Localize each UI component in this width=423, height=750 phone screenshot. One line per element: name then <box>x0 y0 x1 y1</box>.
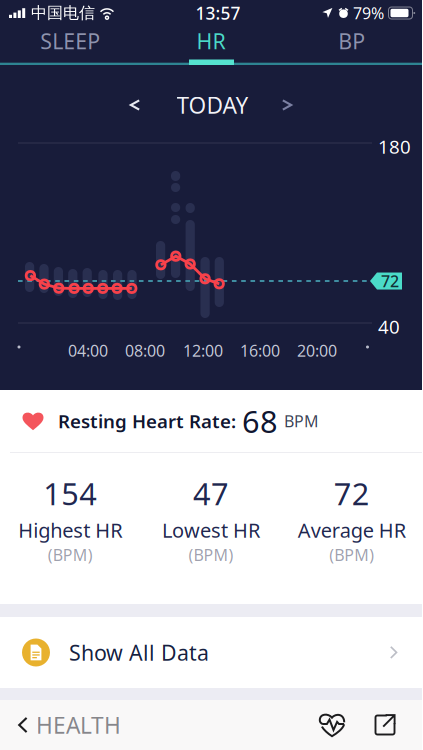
staticText: 72 <box>334 473 370 514</box>
staticText: (BPM) <box>188 544 233 565</box>
staticText: 12:00 <box>183 340 223 361</box>
button[interactable]: Share <box>359 700 411 750</box>
staticText: BP <box>338 27 365 55</box>
staticText: (BPM) <box>48 544 93 565</box>
staticText: Average HR <box>298 517 406 543</box>
staticText: Show All Data <box>69 638 209 667</box>
staticText: 40 <box>378 314 400 339</box>
button[interactable]: Show All Data <box>0 617 422 688</box>
staticText: 08:00 <box>125 340 165 361</box>
staticText: BPM <box>284 410 319 432</box>
staticText: Resting Heart Rate: <box>58 409 236 433</box>
staticText: (BPM) <box>329 544 374 565</box>
button[interactable]: Heart rate detail <box>305 700 359 750</box>
staticText: 68 <box>242 401 278 441</box>
staticText: 20:00 <box>297 340 337 361</box>
button[interactable]: Previous day <box>116 88 154 122</box>
button[interactable]: BP <box>281 26 422 56</box>
staticText: SLEEP <box>40 27 100 55</box>
staticText: 154 <box>43 473 97 514</box>
staticText: HR <box>196 27 225 55</box>
staticText: 16:00 <box>240 340 280 361</box>
staticText: 47 <box>193 473 229 514</box>
button[interactable]: HR <box>141 26 281 56</box>
staticText: HEALTH <box>36 710 121 740</box>
button[interactable]: HEALTH <box>0 700 133 750</box>
staticText: TODAY <box>176 90 248 120</box>
staticText: Lowest HR <box>162 517 260 543</box>
staticText: 180 <box>378 134 411 159</box>
staticText: 13:57 <box>195 1 240 24</box>
staticText: 79% <box>353 2 384 24</box>
staticText: Highest HR <box>18 517 122 543</box>
staticText: 72 <box>381 270 399 292</box>
staticText: 中国电信 <box>31 3 95 23</box>
button[interactable]: SLEEP <box>0 26 141 56</box>
button[interactable]: Next day <box>268 88 306 122</box>
staticText: 04:00 <box>68 340 108 361</box>
